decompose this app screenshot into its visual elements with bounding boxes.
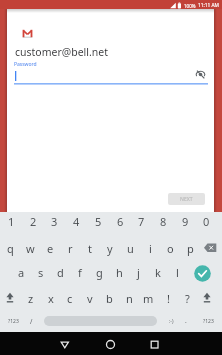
staticText: ? (185, 291, 190, 306)
staticText: y (107, 241, 113, 256)
staticText: 6 (117, 214, 124, 229)
staticText: k (155, 265, 161, 280)
staticText: c (67, 291, 73, 306)
staticText: q (7, 241, 14, 256)
staticText: f (78, 265, 82, 280)
staticText: x (48, 291, 54, 306)
staticText: 7 (138, 214, 145, 229)
staticText: j (137, 265, 140, 280)
staticText: v (87, 291, 93, 306)
staticText: / (30, 317, 33, 326)
staticText: NEXT (180, 196, 193, 203)
staticText: m (143, 291, 154, 306)
staticText: 11:11 AM (198, 2, 219, 9)
staticText: n (126, 291, 133, 306)
staticText: 2 (30, 214, 37, 229)
staticText: 8 (160, 214, 167, 229)
staticText: e (47, 241, 54, 256)
staticText: z (28, 291, 34, 306)
staticText: ?123 (8, 318, 19, 325)
staticText: 9 (182, 214, 189, 229)
staticText: w (26, 241, 35, 256)
staticText: customer@bell.net (15, 45, 109, 59)
staticText: i (149, 241, 152, 256)
staticText: d (57, 265, 64, 280)
staticText: . (185, 316, 187, 325)
staticText: 100% (184, 3, 196, 9)
staticText: h (116, 265, 123, 280)
staticText: r (68, 241, 73, 256)
staticText: 5 (95, 214, 102, 229)
staticText: t (88, 241, 92, 256)
staticText: 1 (8, 214, 15, 229)
staticText: ! (167, 291, 170, 306)
staticText: b (106, 291, 113, 306)
staticText: a (18, 265, 25, 280)
staticText: u (127, 241, 134, 256)
staticText: o (167, 241, 174, 256)
staticText: p (187, 241, 194, 256)
staticText: :-) (169, 318, 174, 325)
staticText: 3 (51, 214, 58, 229)
staticText: 4 (73, 214, 80, 229)
staticText: l (176, 265, 179, 280)
staticText: s (38, 265, 44, 280)
staticText: ?123 (203, 318, 214, 325)
staticText: Password (14, 61, 37, 68)
staticText: g (96, 265, 103, 280)
staticText: 0 (203, 214, 210, 229)
